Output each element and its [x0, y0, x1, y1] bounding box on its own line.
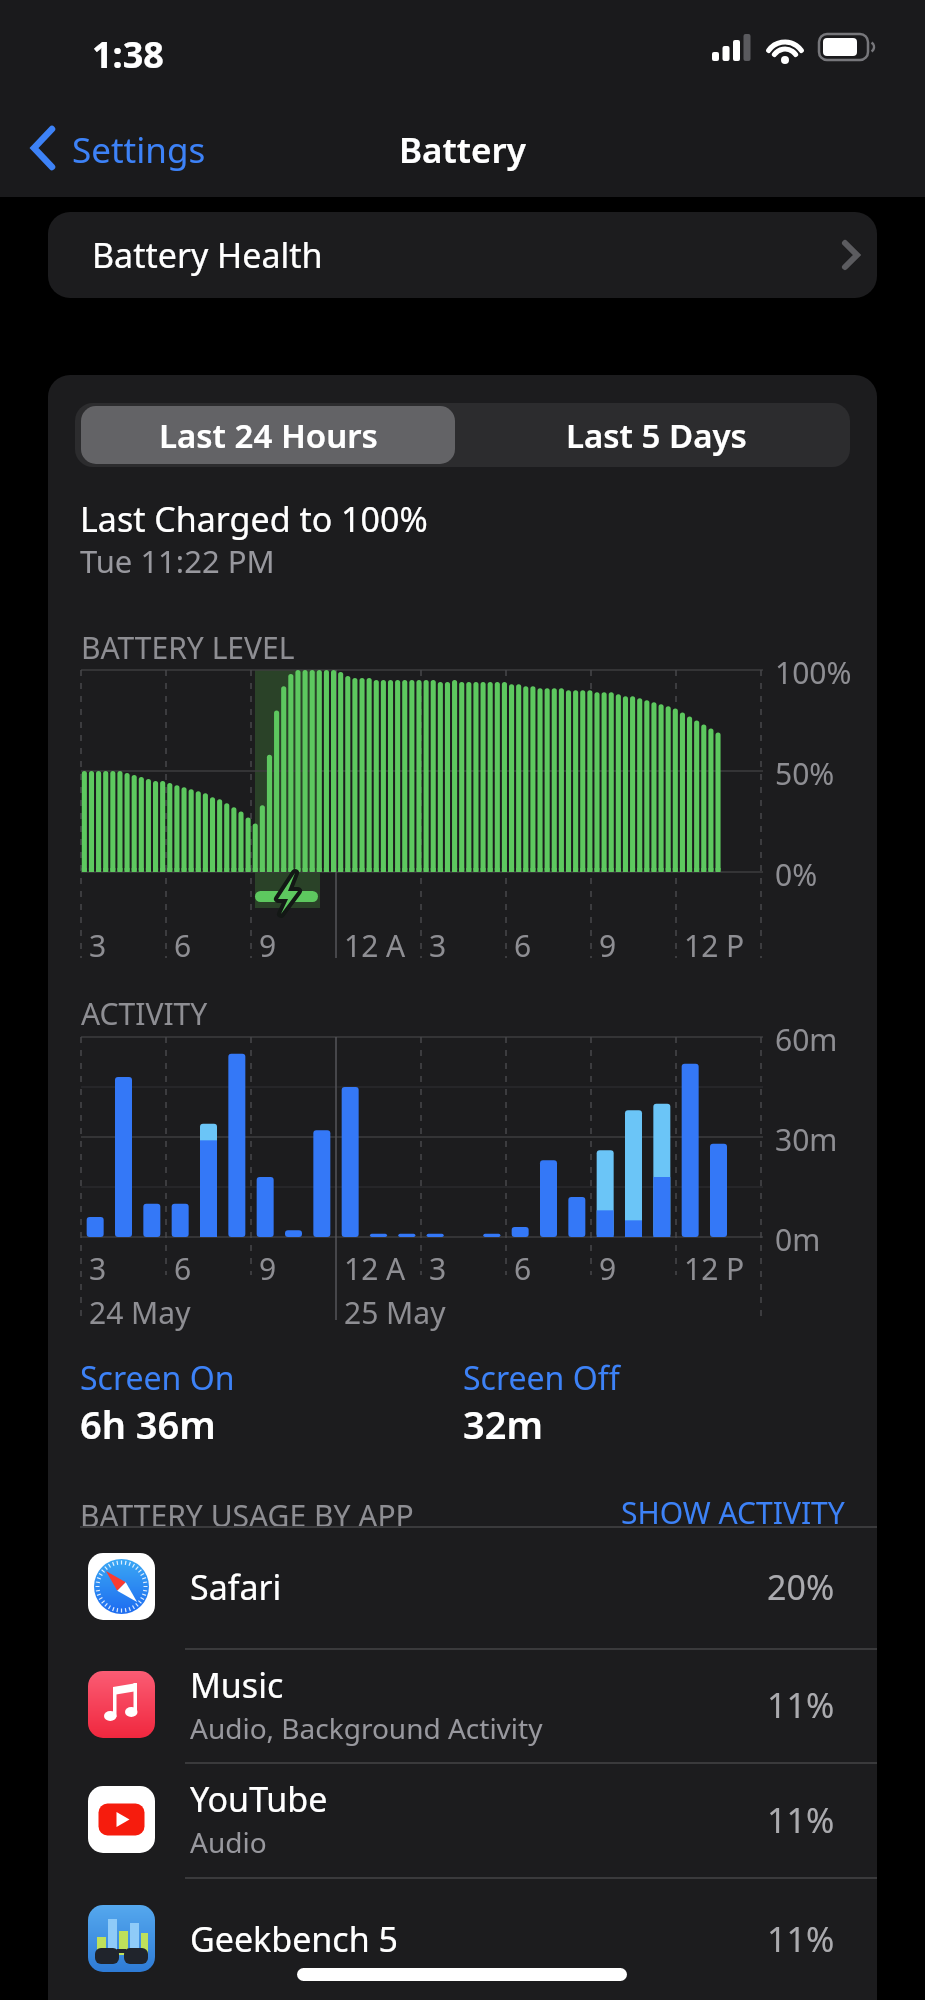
- staticText: Audio, Background Activity: [190, 1709, 543, 1747]
- button[interactable]: Last 5 Days: [462, 403, 850, 467]
- staticText: 25 May: [344, 1292, 446, 1333]
- staticText: 11%: [767, 1682, 835, 1728]
- staticText: Audio: [190, 1823, 267, 1861]
- staticText: 6: [174, 925, 192, 966]
- staticText: ACTIVITY: [81, 993, 208, 1034]
- staticText: 24 May: [89, 1292, 191, 1333]
- staticText: 11%: [767, 1916, 835, 1962]
- staticText: 60m: [775, 1019, 838, 1060]
- staticText: 3: [89, 1248, 107, 1289]
- staticText: Tue 11:22 PM: [80, 540, 275, 582]
- staticText: Last Charged to 100%: [80, 496, 428, 542]
- staticText: 30m: [775, 1119, 838, 1160]
- button[interactable]: YouTube: [48, 1762, 877, 1877]
- staticText: Screen On: [80, 1356, 235, 1400]
- staticText: 9: [599, 925, 617, 966]
- staticText: 12 P: [684, 925, 745, 966]
- staticText: 3: [429, 925, 447, 966]
- staticText: 6: [514, 1248, 532, 1289]
- staticText: 9: [259, 925, 277, 966]
- staticText: 50%: [775, 753, 835, 794]
- staticText: 6: [514, 925, 532, 966]
- button[interactable]: Geekbench 5: [48, 1877, 877, 2000]
- staticText: YouTube: [190, 1776, 328, 1822]
- staticText: 0%: [775, 854, 818, 895]
- staticText: 6: [174, 1248, 192, 1289]
- staticText: SHOW ACTIVITY: [621, 1492, 845, 1533]
- staticText: BATTERY USAGE BY APP: [80, 1495, 414, 1536]
- button[interactable]: SHOW ACTIVITY: [48, 1492, 845, 1533]
- staticText: 3: [429, 1248, 447, 1289]
- button[interactable]: Safari: [48, 1526, 877, 1648]
- staticText: 3: [89, 925, 107, 966]
- staticText: 12 A: [344, 1248, 406, 1289]
- staticText: Last 24 Hours: [159, 413, 378, 458]
- staticText: Battery Health: [92, 232, 323, 278]
- staticText: 20%: [767, 1564, 835, 1610]
- staticText: 12 A: [344, 925, 406, 966]
- staticText: 9: [259, 1248, 277, 1289]
- staticText: 0m: [775, 1219, 821, 1260]
- staticText: BATTERY LEVEL: [81, 627, 295, 668]
- staticText: 9: [599, 1248, 617, 1289]
- button[interactable]: Battery Health: [48, 212, 877, 298]
- staticText: 12 P: [684, 1248, 745, 1289]
- staticText: Music: [190, 1662, 284, 1708]
- button[interactable]: Settings: [22, 120, 222, 176]
- staticText: Screen Off: [463, 1356, 620, 1400]
- button[interactable]: Music: [48, 1648, 877, 1762]
- staticText: Last 5 Days: [566, 413, 747, 458]
- staticText: Settings: [72, 126, 206, 174]
- staticText: Battery: [399, 126, 526, 174]
- staticText: 32m: [463, 1398, 543, 1450]
- staticText: 1:38: [92, 30, 164, 79]
- staticText: 11%: [767, 1797, 835, 1843]
- staticText: 100%: [775, 652, 852, 693]
- staticText: Geekbench 5: [190, 1916, 398, 1962]
- button[interactable]: Last 24 Hours: [75, 403, 462, 467]
- staticText: Safari: [190, 1564, 282, 1610]
- staticText: 6h 36m: [80, 1398, 216, 1450]
